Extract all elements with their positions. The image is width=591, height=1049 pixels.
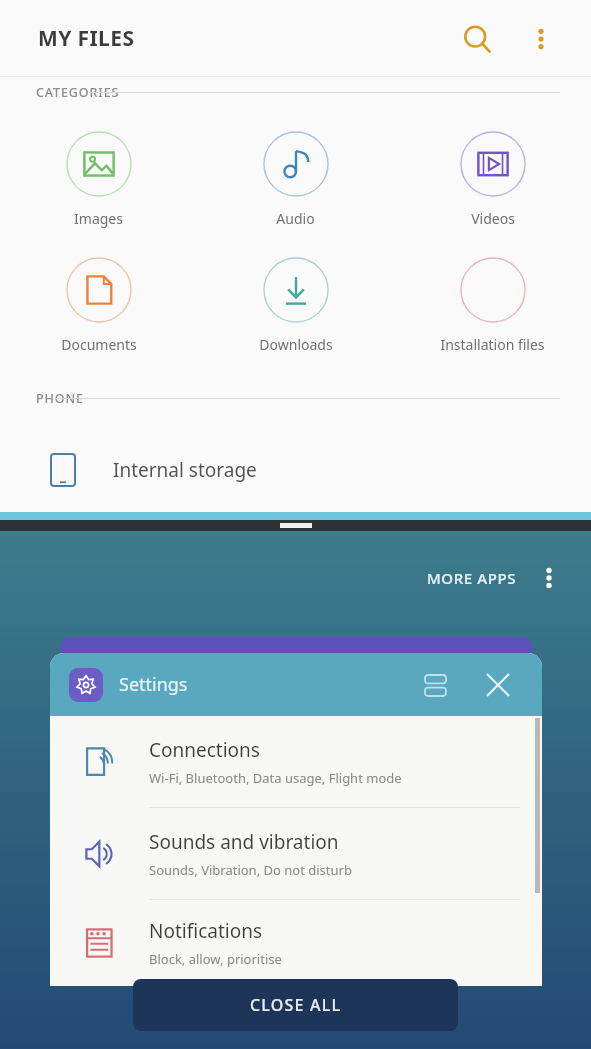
button[interactable]: MORE APPS <box>417 558 527 598</box>
button[interactable]: Internal storage <box>0 439 591 501</box>
button[interactable]: Settings app icon <box>69 668 103 702</box>
staticText: Documents <box>61 335 137 354</box>
button[interactable]: Search <box>453 15 501 63</box>
staticText: Wi-Fi, Bluetooth, Data usage, Flight mod… <box>149 769 402 787</box>
staticText: Block, allow, prioritise <box>149 950 282 968</box>
staticText: Sounds and vibration <box>149 829 339 855</box>
staticText: Connections <box>149 737 260 763</box>
staticText: CATEGORIES <box>36 84 120 101</box>
button[interactable]: Images <box>0 131 197 228</box>
staticText: Audio <box>276 209 315 228</box>
staticText: Settings <box>119 672 188 697</box>
staticText: MORE APPS <box>427 568 517 588</box>
button[interactable]: Audio <box>197 131 394 228</box>
button[interactable]: Close <box>476 663 520 707</box>
button[interactable]: CLOSE ALL <box>133 979 458 1031</box>
button[interactable] <box>60 637 533 677</box>
staticText: Internal storage <box>113 457 257 483</box>
staticText: Installation files <box>440 335 545 354</box>
button[interactable]: Connections <box>50 716 542 807</box>
button[interactable]: More options <box>517 15 565 63</box>
button[interactable]: Notifications <box>50 900 542 986</box>
staticText: Images <box>74 209 123 228</box>
staticText: CLOSE ALL <box>250 994 342 1016</box>
button[interactable]: Sounds and vibration <box>50 808 542 899</box>
button[interactable]: Downloads <box>197 257 394 354</box>
button[interactable]: Videos <box>394 131 591 228</box>
button[interactable]: More options <box>527 556 571 600</box>
button[interactable]: Documents <box>0 257 197 354</box>
staticText: PHONE <box>36 390 84 407</box>
staticText: MY FILES <box>38 24 135 53</box>
staticText: Notifications <box>149 918 263 944</box>
staticText: Videos <box>471 209 515 228</box>
staticText: Downloads <box>259 335 333 354</box>
button[interactable]: Installation files <box>394 257 591 354</box>
staticText: Sounds, Vibration, Do not disturb <box>149 861 352 879</box>
button[interactable]: Split screen <box>414 664 456 706</box>
